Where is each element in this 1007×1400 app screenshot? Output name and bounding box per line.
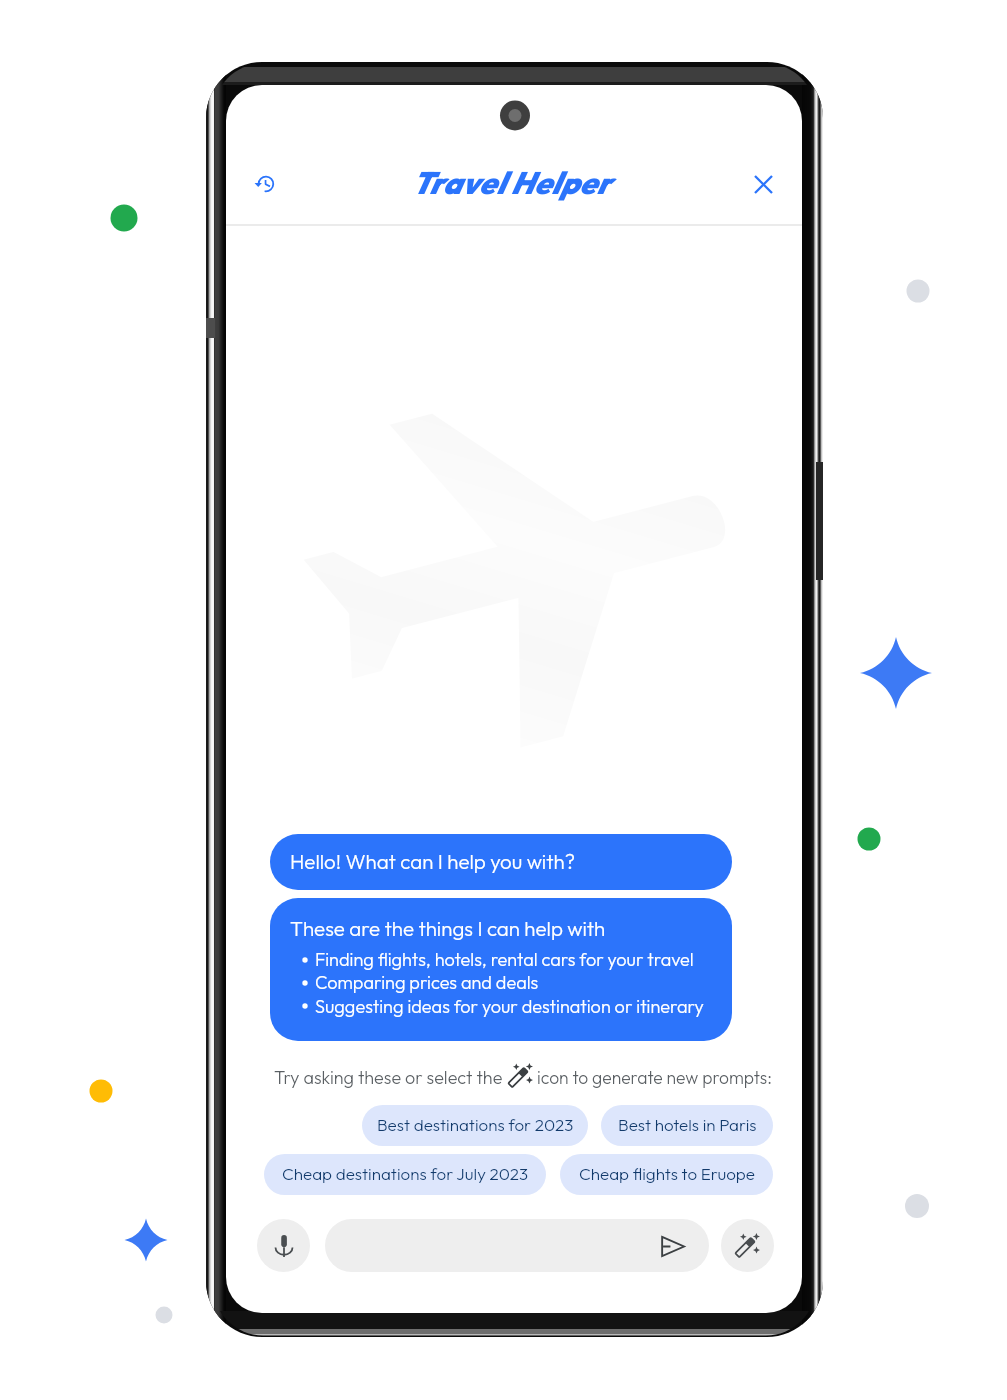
button[interactable]: Cheap flights to Eruope — [560, 1154, 773, 1195]
staticText: Best hotels in Paris — [618, 1114, 757, 1135]
staticText: These are the things I can help with — [290, 915, 606, 941]
button[interactable]: History — [241, 160, 289, 208]
staticText: Hello! What can I help you with? — [290, 848, 575, 874]
button[interactable]: Send — [655, 1229, 689, 1263]
staticText: Cheap destinations for July 2023 — [282, 1163, 529, 1184]
staticText: Best destinations for 2023 — [377, 1114, 574, 1135]
staticText: icon to generate new prompts: — [537, 1066, 773, 1088]
button[interactable]: Cheap destinations for July 2023 — [264, 1154, 546, 1195]
staticText: Comparing prices and deals — [315, 971, 539, 994]
button[interactable]: Generate prompts — [721, 1219, 774, 1272]
button[interactable]: Best hotels in Paris — [601, 1105, 773, 1146]
staticText: Try asking these or select the — [274, 1066, 503, 1089]
staticText: Finding flights, hotels, rental cars for… — [315, 948, 694, 971]
button[interactable]: Best destinations for 2023 — [362, 1105, 588, 1146]
button[interactable]: Voice input — [257, 1219, 310, 1272]
staticText: Cheap flights to Eruope — [579, 1163, 755, 1184]
button[interactable]: Send — [325, 1219, 709, 1272]
staticText: Travel Helper — [411, 163, 611, 202]
staticText: Suggesting ideas for your destination or… — [315, 995, 704, 1018]
button[interactable]: Close — [739, 160, 787, 208]
